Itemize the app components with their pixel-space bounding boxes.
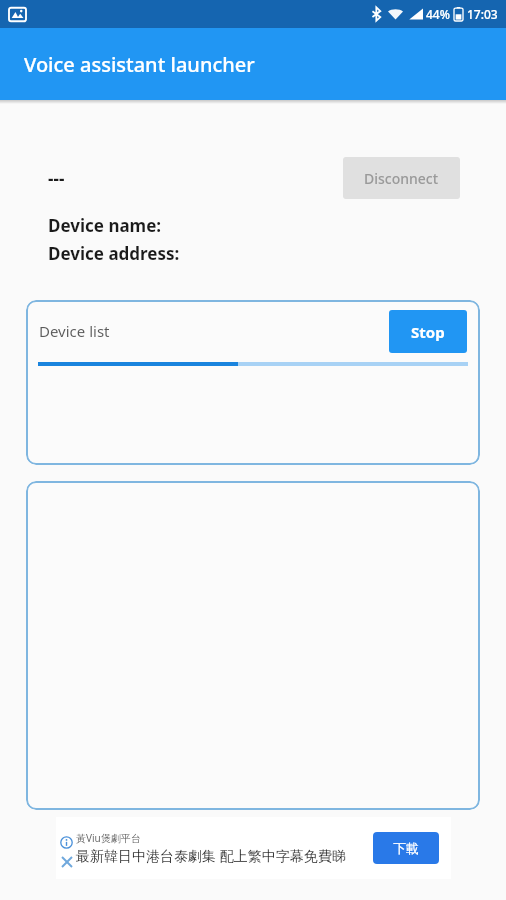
staticText: Device name: bbox=[48, 214, 162, 237]
staticText: Disconnect bbox=[364, 169, 439, 188]
button[interactable]: Disconnect bbox=[343, 157, 460, 199]
other: Close ad bbox=[60, 855, 74, 869]
staticText: 最新韓日中港台泰劇集 配上繁中字幕免費睇 bbox=[76, 846, 346, 865]
staticText: 17:03 bbox=[467, 6, 498, 22]
button[interactable]: Ad info bbox=[56, 817, 451, 879]
other: Ad info bbox=[60, 836, 73, 849]
button[interactable]: Stop bbox=[389, 310, 467, 353]
staticText: Voice assistant launcher bbox=[24, 51, 255, 78]
staticText: Device list bbox=[39, 321, 110, 341]
staticText: 下載 bbox=[393, 840, 419, 856]
staticText: --- bbox=[48, 167, 65, 190]
staticText: 44% bbox=[426, 6, 450, 22]
staticText: Device address: bbox=[48, 242, 180, 265]
staticText: 黃Viu煲劇平台 bbox=[76, 831, 141, 845]
staticText: Stop bbox=[411, 322, 445, 342]
button[interactable]: 下載 bbox=[373, 832, 439, 864]
